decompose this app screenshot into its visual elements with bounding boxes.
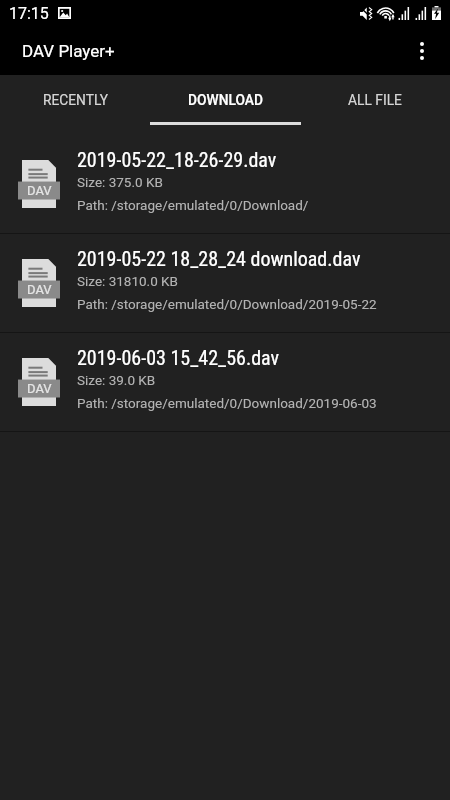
- button[interactable]: ALL FILE: [300, 75, 450, 124]
- button[interactable]: More options: [392, 26, 450, 75]
- staticText: DAV: [27, 282, 52, 297]
- staticText: Path: /storage/emulated/0/Download/2019-…: [77, 296, 377, 312]
- staticText: DAV Player+: [22, 41, 115, 61]
- staticText: DAV: [27, 183, 52, 198]
- button[interactable]: DAV: [0, 333, 450, 431]
- staticText: DAV: [27, 381, 52, 396]
- staticText: Path: /storage/emulated/0/Download/2019-…: [77, 395, 377, 411]
- button[interactable]: DAV: [0, 135, 450, 233]
- staticText: DOWNLOAD: [188, 92, 263, 108]
- staticText: 2019-05-22_18-26-29.dav: [77, 148, 277, 171]
- staticText: 2019-05-22 18_28_24 download.dav: [77, 247, 361, 270]
- button[interactable]: DOWNLOAD: [150, 75, 300, 124]
- staticText: 2019-06-03 15_42_56.dav: [77, 346, 280, 369]
- staticText: Size: 31810.0 KB: [77, 273, 178, 289]
- staticText: 17:15: [9, 4, 49, 23]
- staticText: Size: 39.0 KB: [77, 372, 156, 388]
- staticText: ALL FILE: [348, 92, 402, 108]
- button[interactable]: RECENTLY: [0, 75, 150, 124]
- staticText: Path: /storage/emulated/0/Download/: [77, 197, 309, 213]
- staticText: Size: 375.0 KB: [77, 174, 163, 190]
- staticText: RECENTLY: [43, 92, 108, 108]
- button[interactable]: DAV: [0, 234, 450, 332]
